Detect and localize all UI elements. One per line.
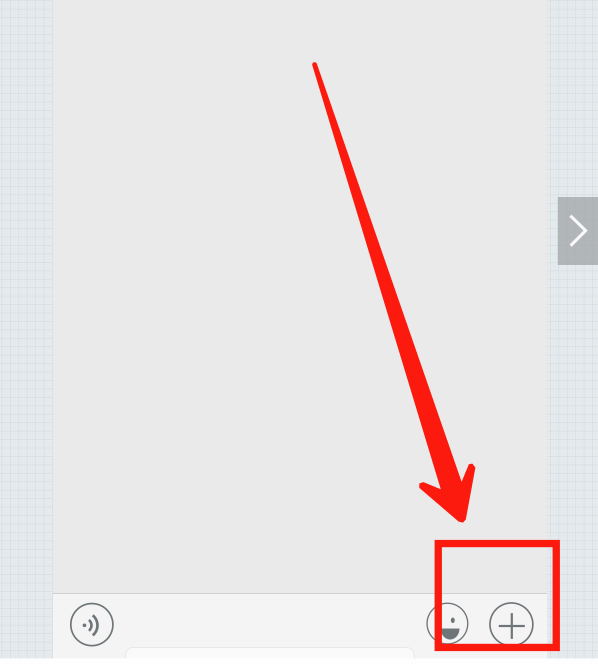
button[interactable]: Add [490, 603, 533, 646]
button[interactable]: Emoji [427, 603, 468, 644]
button[interactable]: Apps [71, 604, 113, 646]
button[interactable]: Next [558, 197, 598, 265]
